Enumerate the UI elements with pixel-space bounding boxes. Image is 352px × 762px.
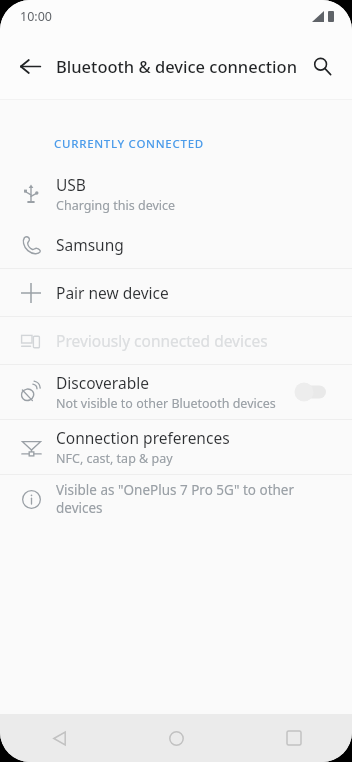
button[interactable]: Connection preferences [0, 420, 352, 474]
staticText: Not visible to other Bluetooth devices [56, 395, 276, 412]
staticText: Charging this device [56, 197, 176, 214]
button[interactable]: Recent apps [235, 714, 352, 762]
button[interactable]: Back [0, 714, 118, 762]
button[interactable]: Discoverable [292, 377, 338, 407]
staticText: Discoverable [56, 372, 149, 393]
staticText: Visible as "OnePlus 7 Pro 5G" to other d… [56, 481, 338, 517]
staticText: Previously connected devices [56, 330, 268, 351]
staticText: Connection preferences [56, 427, 230, 448]
staticText: Pair new device [56, 282, 169, 303]
button[interactable]: Back [6, 42, 54, 90]
staticText: 10:00 [20, 8, 52, 25]
button[interactable]: Previously connected devices [0, 317, 352, 364]
button[interactable]: Pair new device [0, 269, 352, 316]
button[interactable]: Visible as "OnePlus 7 Pro 5G" to other d… [0, 475, 352, 522]
button[interactable]: Home [118, 714, 235, 762]
button[interactable]: USB [0, 167, 352, 221]
staticText: Bluetooth & device connection [56, 55, 297, 77]
staticText: Samsung [56, 234, 124, 255]
staticText: CURRENTLY CONNECTED [54, 136, 204, 152]
button[interactable]: Samsung [0, 221, 352, 268]
button[interactable]: Search [298, 42, 346, 90]
button[interactable]: Discoverable [0, 365, 352, 419]
staticText: USB [56, 174, 86, 195]
staticText: NFC, cast, tap & pay [56, 450, 173, 467]
